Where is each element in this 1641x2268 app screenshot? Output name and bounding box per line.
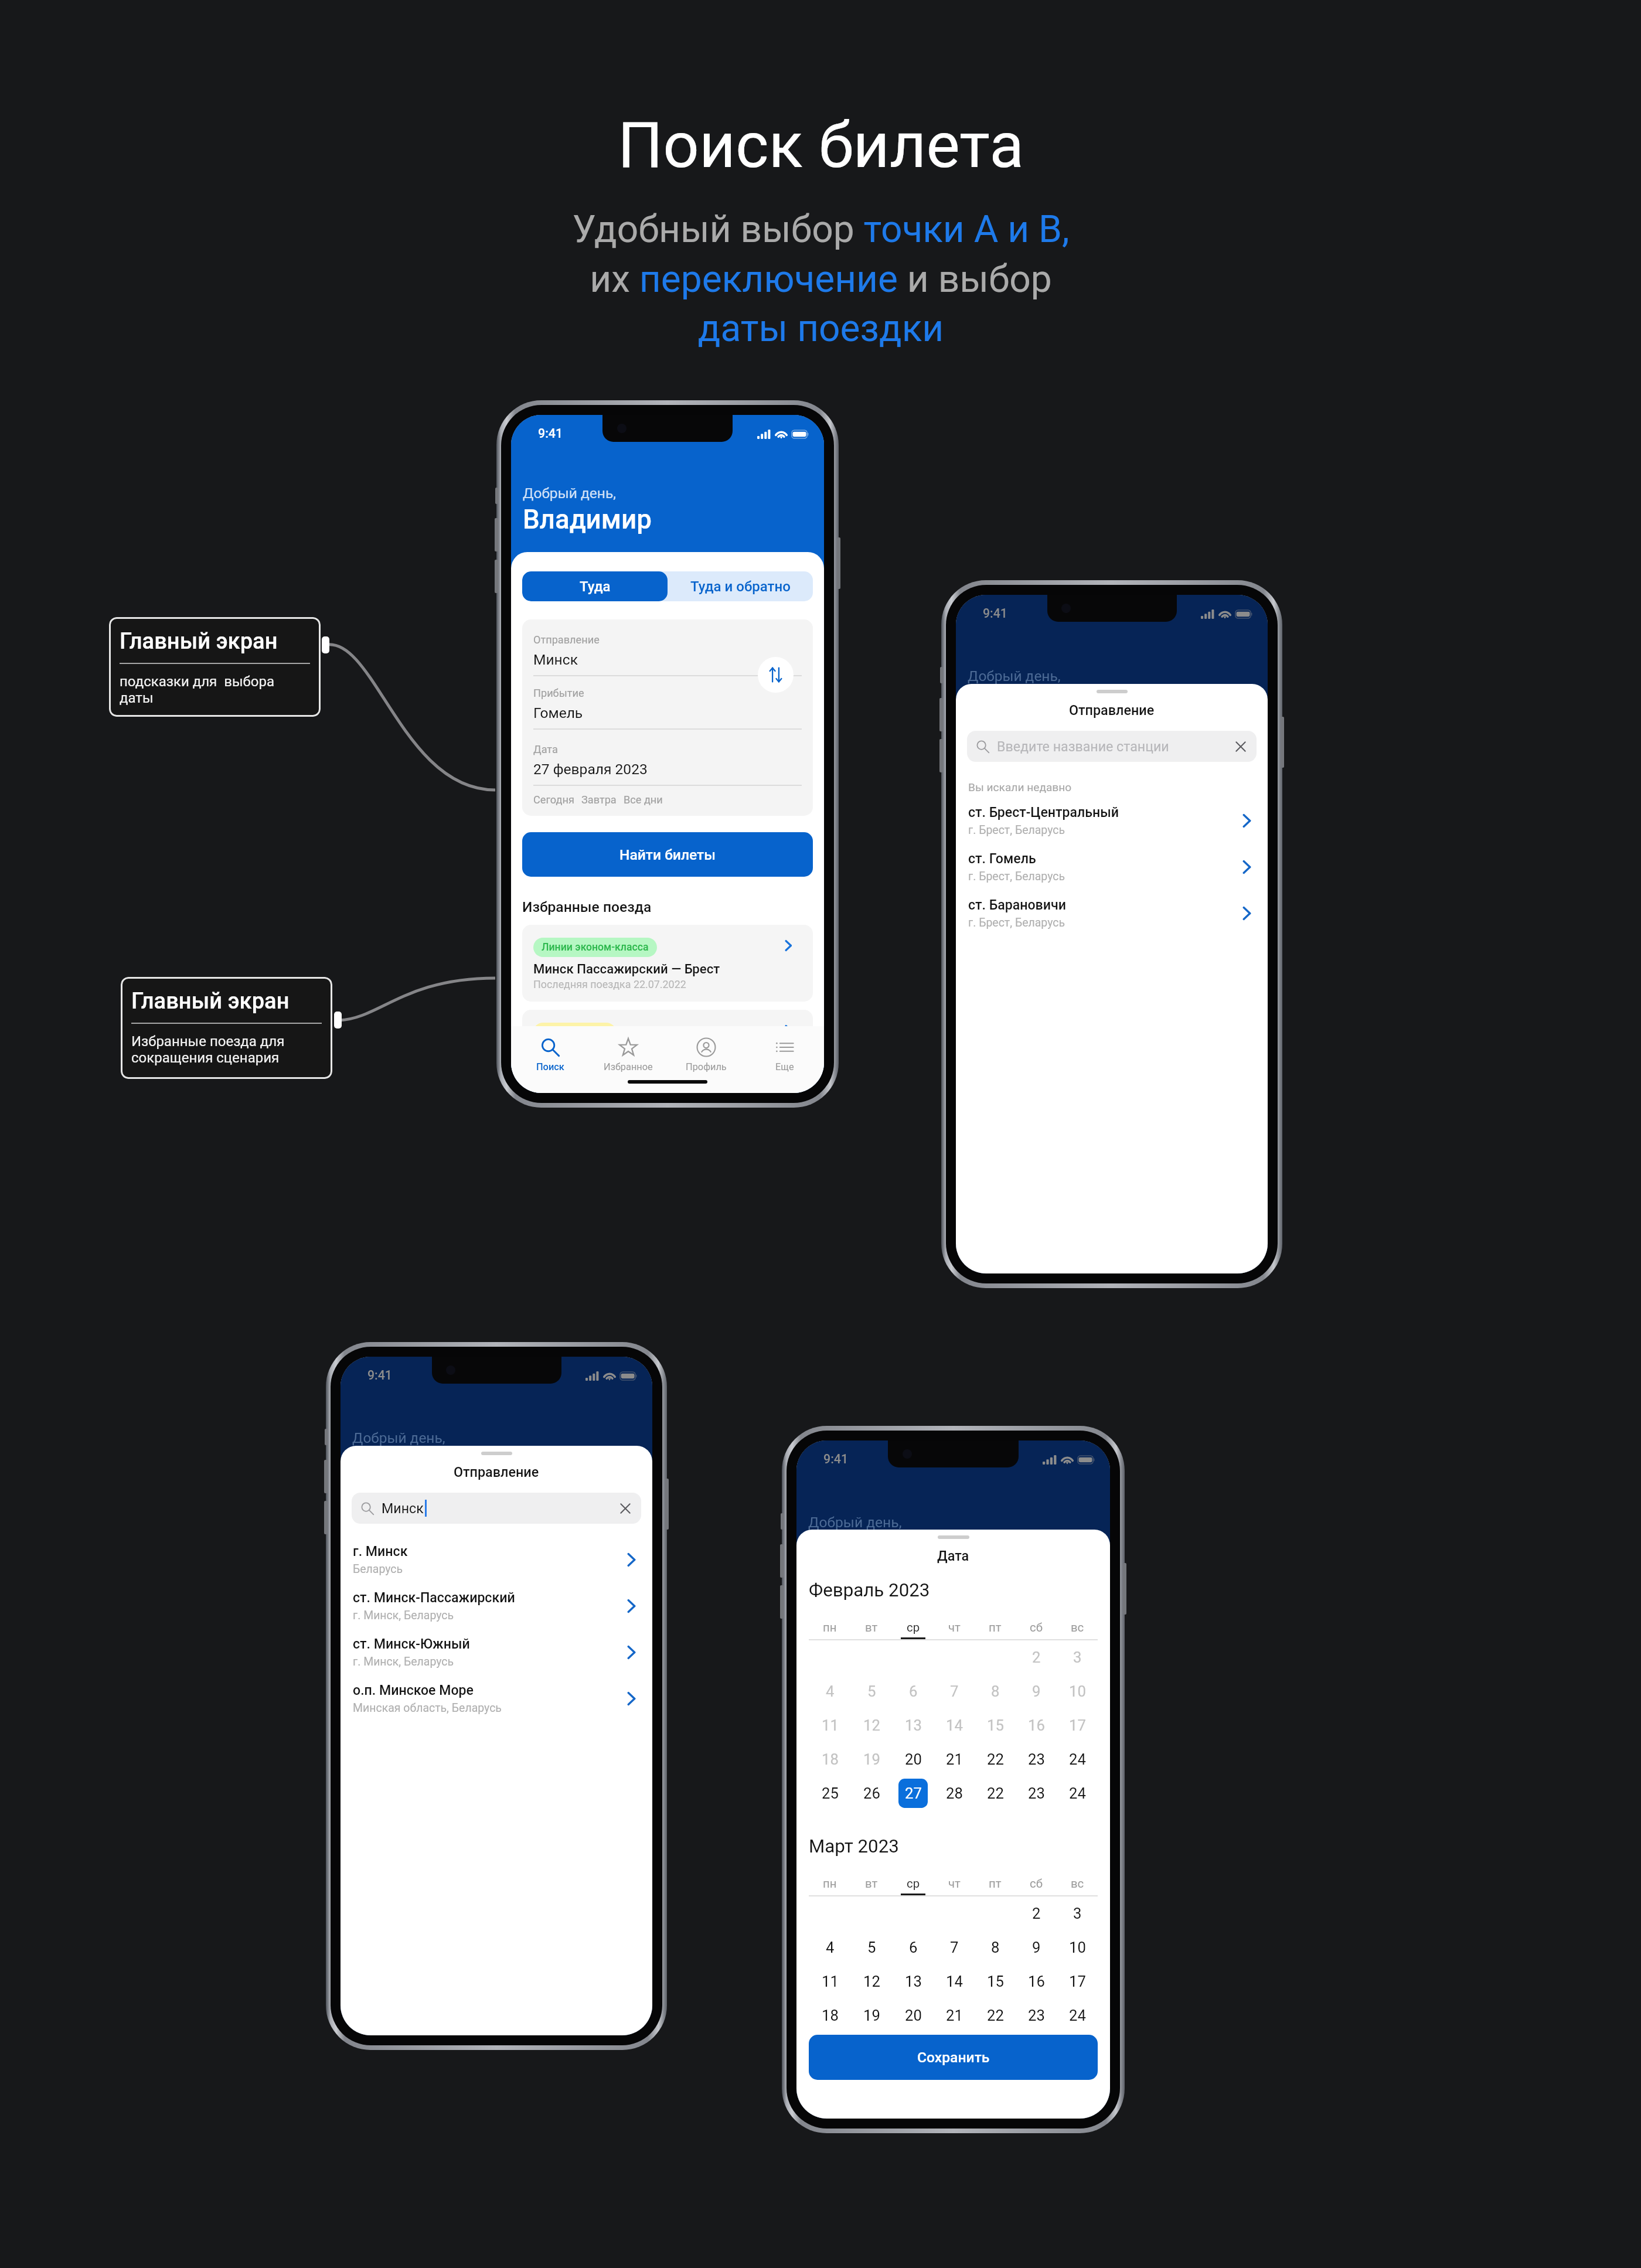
button[interactable]: 16	[1022, 1711, 1051, 1740]
button[interactable]: 23	[1022, 1745, 1051, 1774]
button[interactable]: 15	[980, 1711, 1010, 1740]
button[interactable]: Еще	[745, 1026, 824, 1075]
button[interactable]: 15	[980, 1967, 1010, 1996]
button[interactable]: 20	[898, 2001, 928, 2030]
button[interactable]: 18	[815, 2001, 845, 2030]
button[interactable]: 8	[980, 1933, 1010, 1962]
button[interactable]: Избранное	[589, 1026, 667, 1075]
button[interactable]: 12	[857, 1967, 886, 1996]
button[interactable]: Все дни	[624, 794, 663, 806]
button[interactable]: 14	[939, 1711, 969, 1740]
button[interactable]: 26	[857, 1779, 886, 1808]
button[interactable]: Минск	[352, 1493, 641, 1524]
button[interactable]: ст. Барановичи	[956, 890, 1268, 937]
button[interactable]: 9	[1022, 1933, 1051, 1962]
button[interactable]: Найти билеты	[522, 832, 813, 877]
button[interactable]: 21	[939, 2001, 969, 2030]
button[interactable]: 7	[939, 1933, 969, 1962]
staticText: 18	[822, 2007, 839, 2024]
button[interactable]: 11	[815, 1967, 845, 1996]
button[interactable]: 21	[939, 1745, 969, 1774]
button[interactable]: Очистить	[618, 1501, 632, 1516]
button[interactable]: 17	[1063, 1711, 1092, 1740]
button[interactable]: 13	[898, 1711, 928, 1740]
button[interactable]: 2	[1022, 1643, 1051, 1672]
staticText: 23	[1028, 1751, 1045, 1768]
staticText: 27 февраля 2023	[533, 761, 648, 778]
staticText: 27	[905, 1785, 922, 1802]
button[interactable]: 4	[815, 1933, 845, 1962]
staticText: 6	[909, 1939, 918, 1956]
button[interactable]: 5	[857, 1677, 886, 1706]
button[interactable]: 12	[857, 1711, 886, 1740]
button[interactable]: 6	[898, 1677, 928, 1706]
staticText: Отправление	[454, 1464, 539, 1480]
button[interactable]: ст. Брест-Центральный	[956, 798, 1268, 844]
button[interactable]: г. Минск	[341, 1537, 652, 1583]
staticText: Найти билеты	[619, 846, 716, 863]
button[interactable]: Очистить	[1234, 740, 1248, 754]
button[interactable]: 10	[1063, 1677, 1092, 1706]
button[interactable]: 5	[857, 1933, 886, 1962]
button[interactable]: Профиль	[667, 1026, 745, 1075]
button[interactable]: 22	[980, 2001, 1010, 2030]
button[interactable]: Сегодня	[533, 794, 574, 806]
button[interactable]: 22	[980, 1779, 1010, 1808]
button[interactable]: 25	[815, 1779, 845, 1808]
button[interactable]: 11	[815, 1711, 845, 1740]
button[interactable]: о.п. Минское Море	[341, 1676, 652, 1722]
staticText: Вы искали недавно	[968, 781, 1072, 794]
button[interactable]: 16	[1022, 1967, 1051, 1996]
button[interactable]: 27 февраля 2023	[533, 761, 802, 778]
button[interactable]: Завтра	[581, 794, 617, 806]
staticText: Бизнес-класс	[542, 1026, 608, 1038]
staticText: 21	[946, 1751, 963, 1768]
button[interactable]: ст. Гомель	[956, 844, 1268, 890]
button[interactable]: 8	[980, 1677, 1010, 1706]
button[interactable]: 18	[815, 1745, 845, 1774]
staticText: Владимир	[523, 504, 652, 535]
button[interactable]: 23	[1022, 1779, 1051, 1808]
button[interactable]: 22	[980, 1745, 1010, 1774]
button[interactable]: 7	[939, 1677, 969, 1706]
staticText: вс	[1071, 1877, 1084, 1891]
button[interactable]: 4	[815, 1677, 845, 1706]
button[interactable]: Поиск	[511, 1026, 589, 1075]
button[interactable]: 14	[939, 1967, 969, 1996]
button[interactable]: 10	[1063, 1933, 1092, 1962]
button[interactable]: 13	[898, 1967, 928, 1996]
button[interactable]: 27	[898, 1779, 928, 1808]
staticText: Туда и обратно	[690, 578, 791, 595]
button[interactable]: ст. Минск-Пассажирский	[341, 1583, 652, 1629]
staticText: 9:41	[367, 1368, 392, 1382]
button[interactable]: 24	[1063, 1779, 1092, 1808]
button[interactable]: Поменять местами	[758, 657, 794, 693]
button[interactable]: Введите название станции	[967, 731, 1257, 762]
button[interactable]: Туда	[522, 571, 668, 601]
button[interactable]: ст. Минск-Южный	[341, 1629, 652, 1676]
button[interactable]: Туда и обратно	[668, 571, 813, 601]
button[interactable]: Линии эконом-класса	[522, 925, 813, 1002]
staticText: Еще	[775, 1061, 794, 1072]
button[interactable]: 19	[857, 1745, 886, 1774]
button[interactable]: 23	[1022, 2001, 1051, 2030]
staticText: Минск — Витебск	[533, 1046, 641, 1061]
button[interactable]: 19	[857, 2001, 886, 2030]
button[interactable]: 28	[939, 1779, 969, 1808]
button[interactable]: 6	[898, 1933, 928, 1962]
button[interactable]: 24	[1063, 2001, 1092, 2030]
staticText: г. Брест, Беларусь	[968, 823, 1065, 837]
button[interactable]: 20	[898, 1745, 928, 1774]
button[interactable]: 17	[1063, 1967, 1092, 1996]
button[interactable]: Бизнес-класс	[522, 1010, 813, 1087]
staticText: Линии эконом-класса	[542, 941, 649, 953]
staticText: 21	[946, 2007, 963, 2024]
button[interactable]: Гомель	[533, 704, 802, 721]
button[interactable]: Минск	[533, 651, 802, 668]
button[interactable]: Сохранить	[809, 2035, 1098, 2080]
button[interactable]: 9	[1022, 1677, 1051, 1706]
button[interactable]: 2	[1022, 1899, 1051, 1928]
button[interactable]: 24	[1063, 1745, 1092, 1774]
button[interactable]: 3	[1063, 1643, 1092, 1672]
button[interactable]: 3	[1063, 1899, 1092, 1928]
